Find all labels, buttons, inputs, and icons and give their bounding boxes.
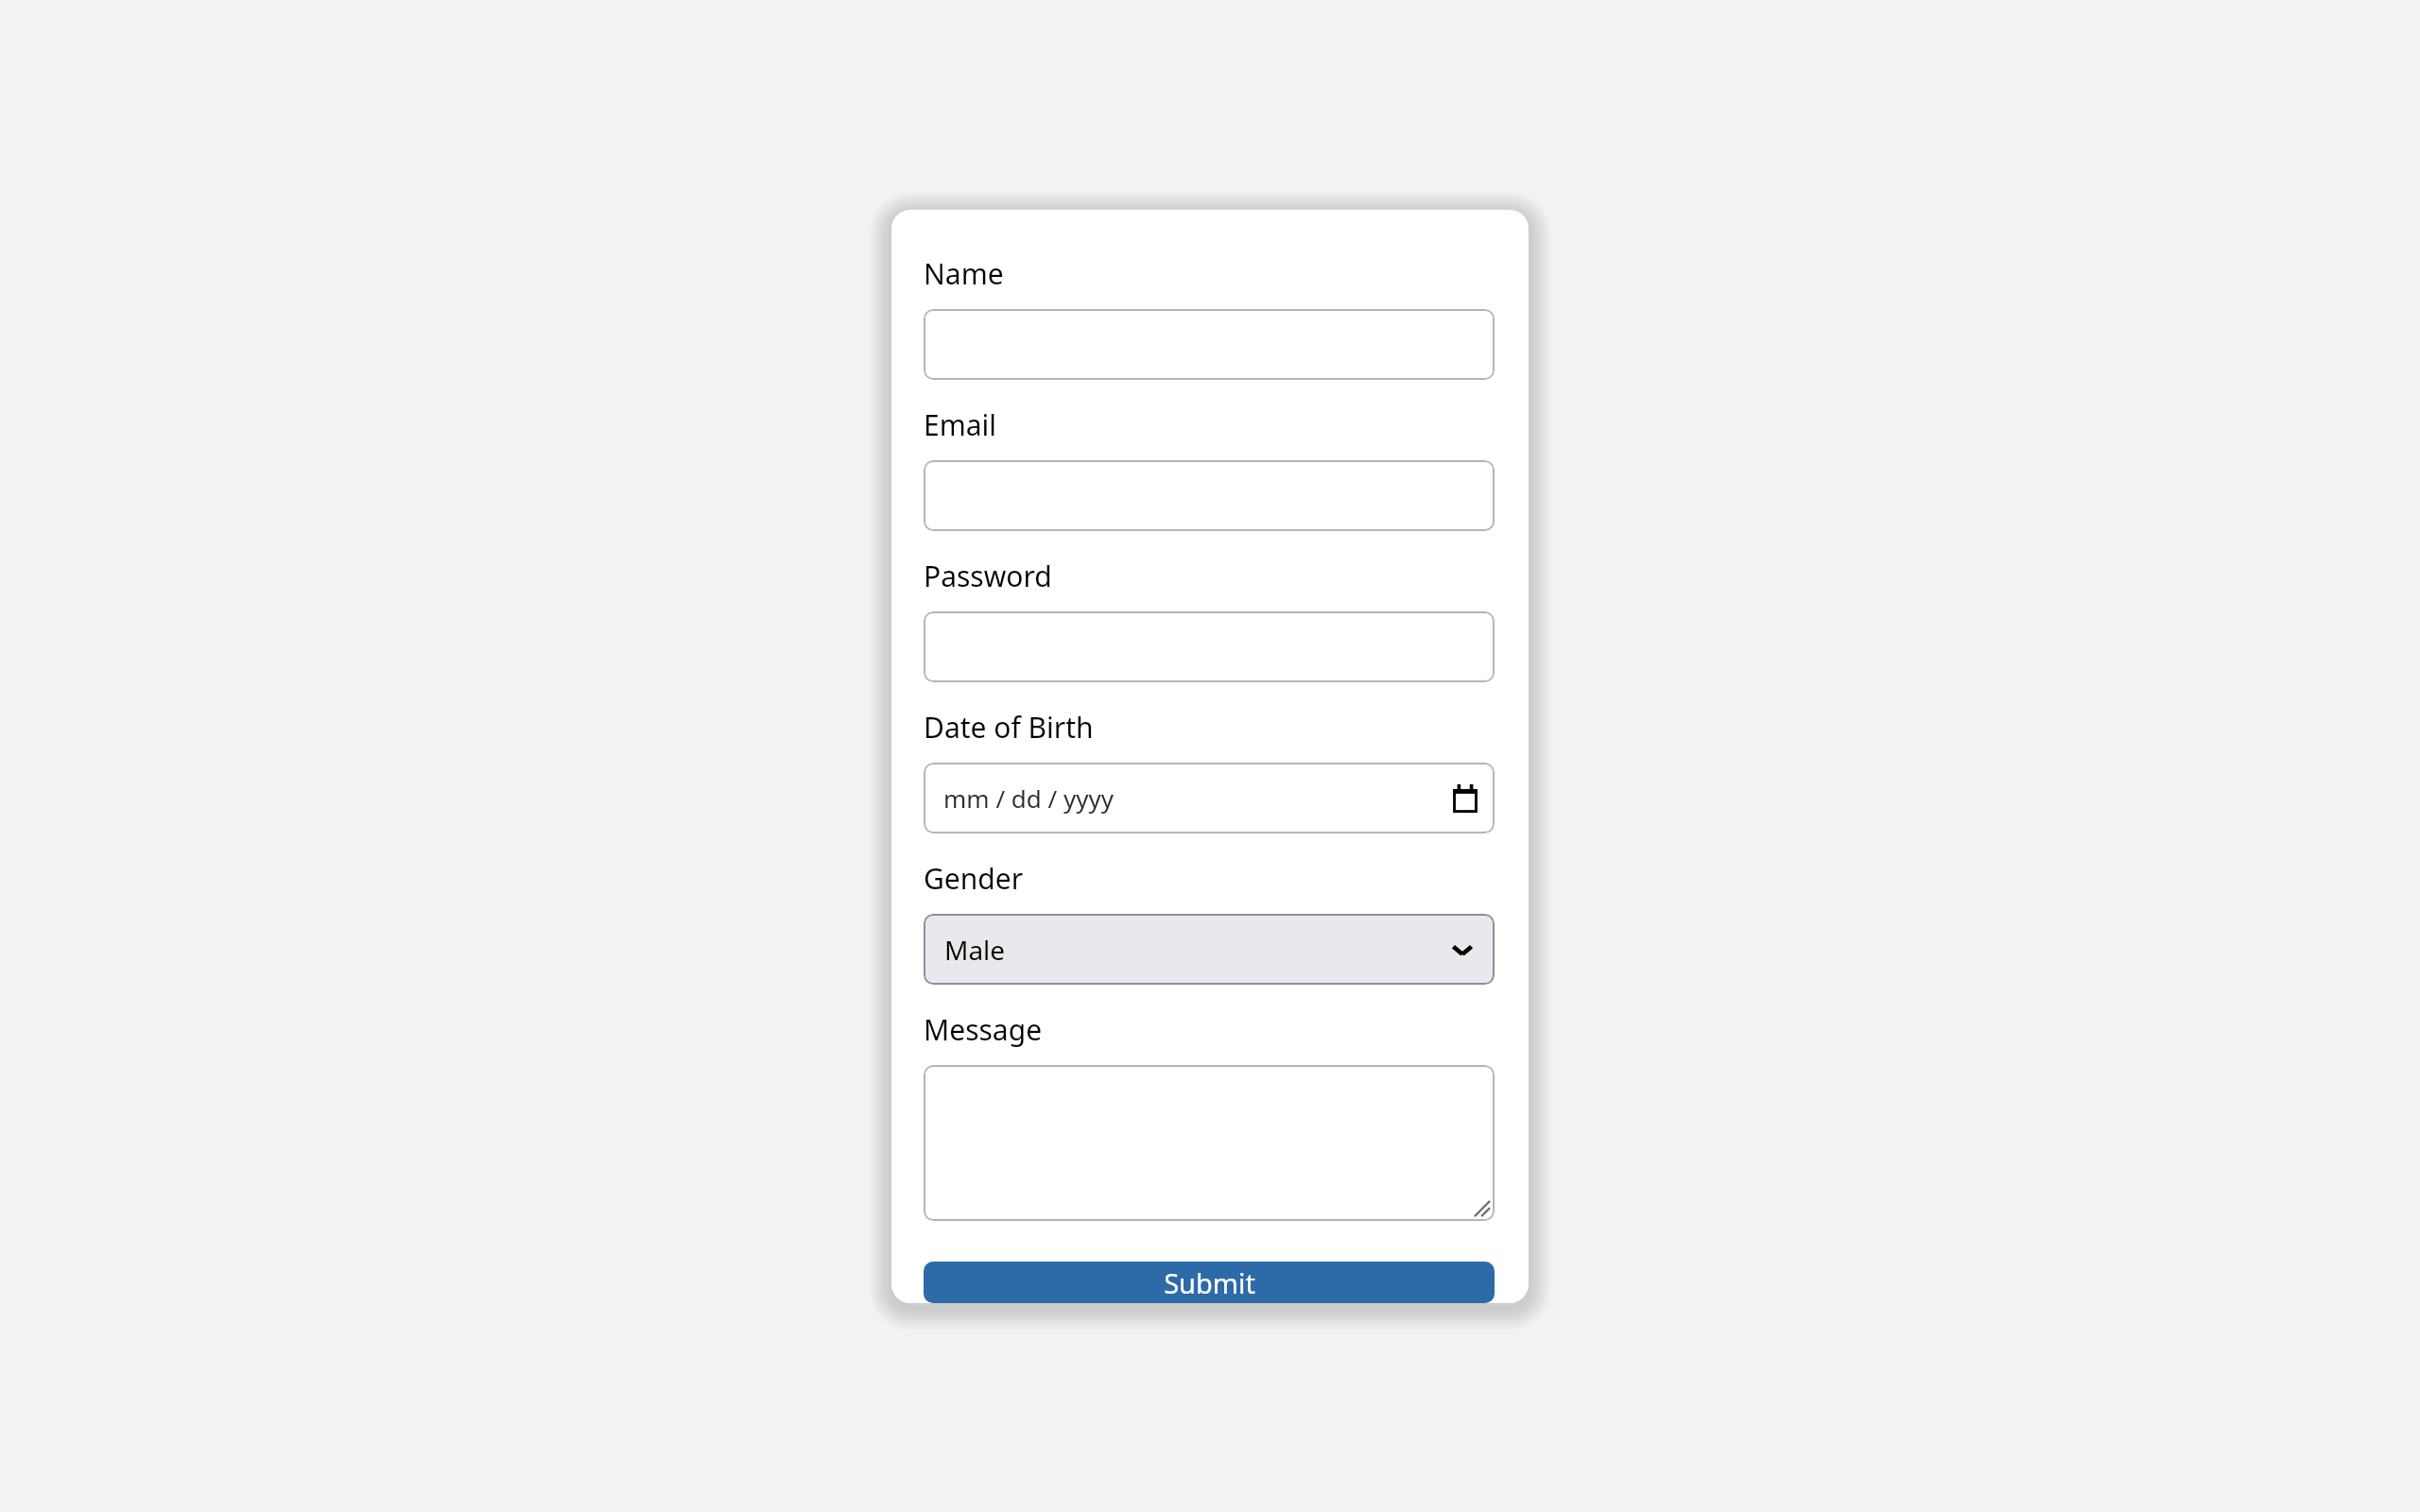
button[interactable]: Show date picker xyxy=(1451,784,1479,813)
button[interactable]: Male xyxy=(924,914,1495,985)
staticText: Submit xyxy=(1164,1264,1255,1301)
staticText: Message xyxy=(924,1010,1043,1049)
staticText: mm / dd / yyyy xyxy=(943,782,1115,815)
staticText: Male xyxy=(944,932,1006,968)
button[interactable] xyxy=(924,309,1495,380)
button[interactable] xyxy=(924,611,1495,682)
staticText: Gender xyxy=(924,859,1024,898)
button[interactable] xyxy=(924,1065,1495,1221)
staticText: Name xyxy=(924,254,1004,293)
button[interactable]: Submit xyxy=(924,1262,1495,1303)
button[interactable]: mm / dd / yyyy xyxy=(924,763,1495,833)
staticText: Date of Birth xyxy=(924,708,1094,747)
staticText: Password xyxy=(924,557,1052,595)
button[interactable] xyxy=(924,460,1495,531)
staticText: Email xyxy=(924,405,997,444)
